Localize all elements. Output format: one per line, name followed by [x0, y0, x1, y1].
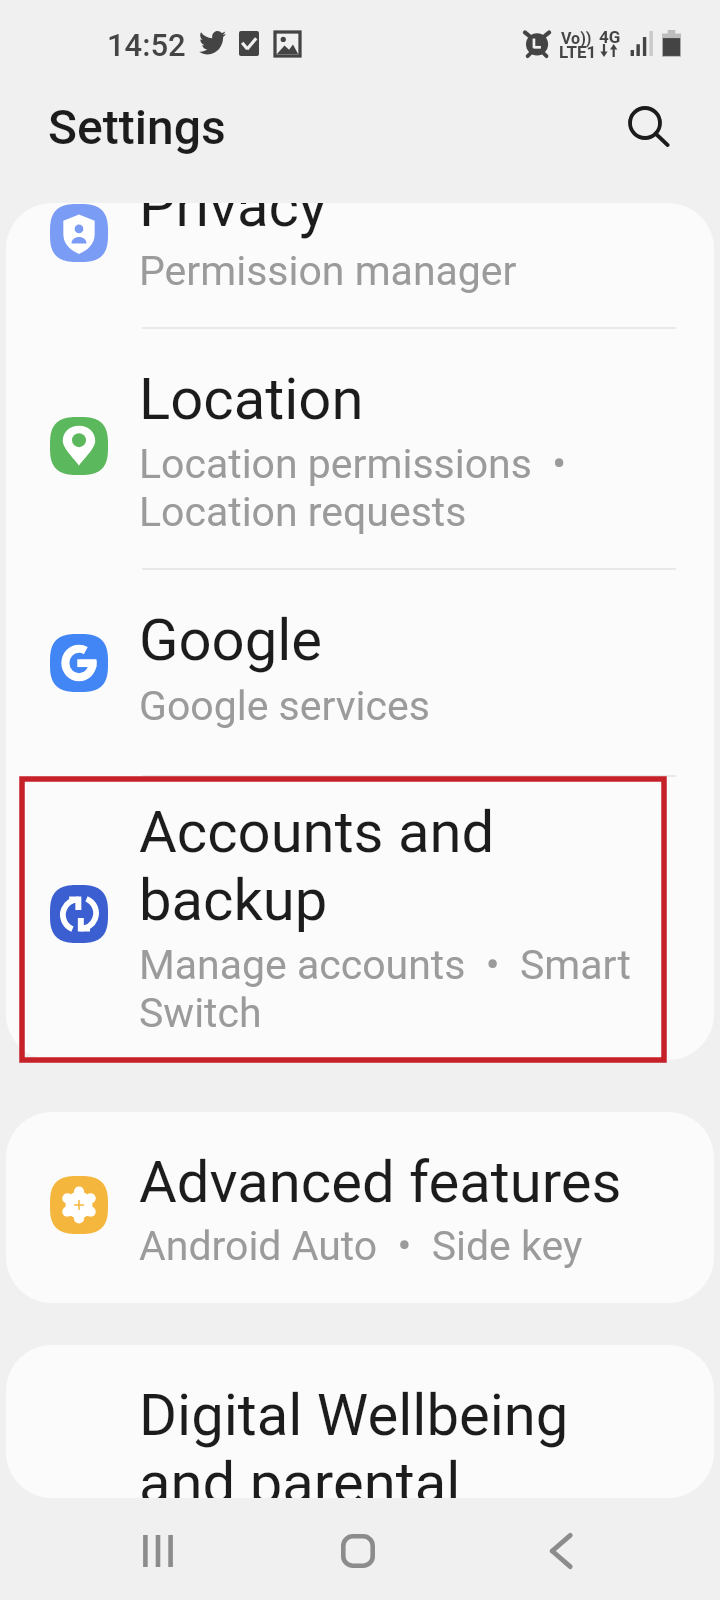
staticText: Privacy — [139, 203, 699, 240]
button[interactable]: Google — [6, 568, 714, 775]
button[interactable]: Accounts and backup — [6, 775, 714, 1060]
staticText: Google services — [139, 682, 699, 730]
button[interactable]: Advanced features — [6, 1112, 714, 1303]
staticText: LTE1 — [559, 44, 597, 62]
staticText: Location — [139, 365, 699, 433]
button[interactable]: Recent apps — [103, 1501, 213, 1600]
button[interactable]: Digital Wellbeing and parental — [6, 1345, 714, 1498]
staticText: Permission manager — [139, 247, 699, 295]
staticText: Android Auto • Side key — [139, 1222, 699, 1270]
button[interactable] — [6, 203, 714, 327]
staticText: Settings — [48, 103, 226, 155]
staticText: 4G — [599, 29, 621, 47]
staticText: Vo)) — [561, 31, 592, 48]
button[interactable]: Location — [6, 327, 714, 568]
staticText: 14:52 — [107, 28, 186, 63]
button[interactable]: Back — [506, 1501, 616, 1600]
staticText: Advanced features — [139, 1148, 699, 1216]
staticText: Location permissions • Location requests — [139, 440, 699, 536]
staticText: Accounts and backup — [139, 798, 699, 934]
staticText: Google — [139, 606, 699, 674]
staticText: Digital Wellbeing and parental — [139, 1381, 699, 1498]
button[interactable]: Search — [608, 86, 690, 168]
button[interactable]: Home — [303, 1501, 413, 1600]
staticText: Manage accounts • Smart Switch — [139, 941, 699, 1037]
